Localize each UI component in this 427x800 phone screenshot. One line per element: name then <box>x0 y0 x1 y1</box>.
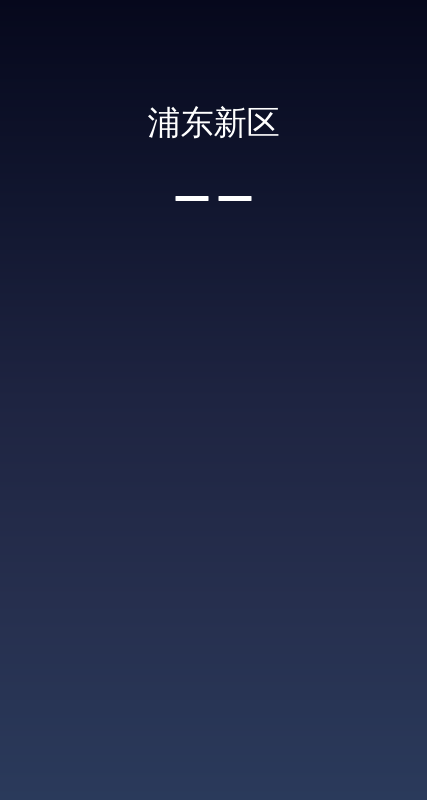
staticText: 浦东新区 <box>147 102 279 143</box>
